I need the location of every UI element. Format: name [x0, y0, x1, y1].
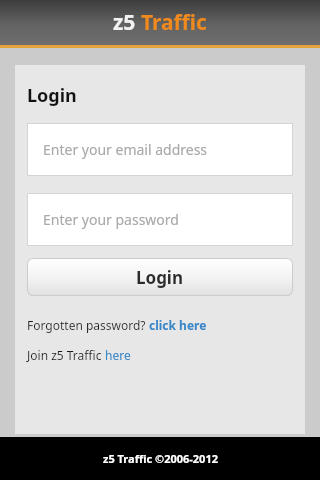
staticText: Join z5 Traffic — [27, 347, 105, 363]
staticText: z5 Traffic ©2006-2012 — [103, 451, 218, 466]
staticText: Login — [27, 83, 77, 108]
button[interactable]: Forgotten password? — [27, 317, 207, 333]
staticText: here — [105, 347, 131, 363]
staticText: click here — [149, 317, 207, 333]
button[interactable]: Enter your password — [28, 194, 292, 245]
staticText: Enter your email address — [43, 140, 208, 159]
staticText: Enter your password — [43, 210, 179, 229]
staticText: Forgotten password? — [27, 317, 149, 333]
button[interactable]: Enter your email address — [28, 124, 292, 175]
button[interactable]: Login — [28, 259, 292, 295]
button[interactable]: Join z5 Traffic — [27, 347, 131, 363]
staticText: z5 — [113, 8, 141, 37]
staticText: Login — [136, 266, 184, 289]
staticText: Traffic — [141, 8, 207, 37]
